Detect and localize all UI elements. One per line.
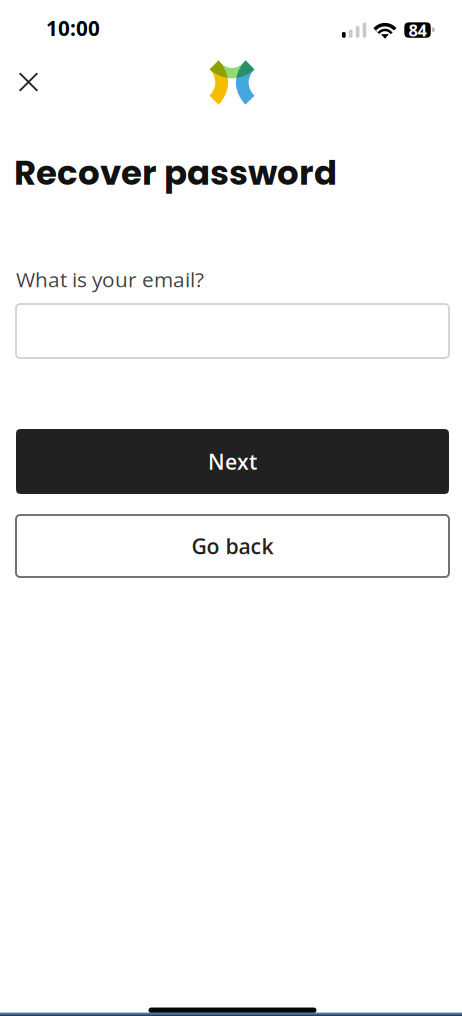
staticText: 84 — [409, 19, 427, 41]
button[interactable]: Close — [6, 60, 50, 104]
staticText: Next — [208, 447, 257, 476]
button[interactable]: Go back — [16, 515, 449, 577]
button[interactable]: Next — [16, 429, 449, 494]
staticText: What is your email? — [16, 265, 204, 293]
staticText: 10:00 — [46, 14, 100, 42]
staticText: Go back — [191, 532, 273, 560]
staticText: Recover password — [14, 149, 337, 197]
